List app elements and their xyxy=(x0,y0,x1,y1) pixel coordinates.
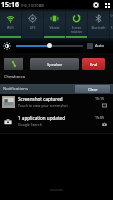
staticText: Auto xyxy=(95,43,104,48)
button[interactable]: End xyxy=(82,58,105,70)
button[interactable]: Vibrate xyxy=(44,9,65,38)
staticText: 15:16 xyxy=(1,0,19,9)
button[interactable]: Bluetooth xyxy=(88,9,109,38)
button[interactable]: Speaker xyxy=(30,58,79,70)
button[interactable]: Sync xyxy=(110,9,113,38)
staticText: Speaker xyxy=(47,62,63,67)
staticText: Sync xyxy=(110,26,113,30)
staticText: Screen xyxy=(66,26,87,30)
staticText: 15:05 xyxy=(95,115,104,120)
staticText: GPS xyxy=(22,26,43,30)
staticText: 15:15 xyxy=(95,96,104,101)
button[interactable]: Quick settings xyxy=(103,1,111,9)
button[interactable]: Screen xyxy=(66,9,87,38)
staticText: Screenshot captured xyxy=(18,96,63,102)
button[interactable]: Clear xyxy=(75,85,110,93)
button[interactable]: 1 application updated xyxy=(0,110,113,133)
staticText: THU, 3 OCTOBER xyxy=(21,4,44,8)
staticText: Clear xyxy=(88,87,98,92)
staticText: Google Search xyxy=(18,122,42,127)
staticText: Chewbacca xyxy=(4,74,26,79)
button[interactable]: Auto xyxy=(87,41,104,50)
button[interactable]: Call xyxy=(4,58,23,70)
staticText: End xyxy=(90,62,98,67)
staticText: Touch to view your screenshot xyxy=(18,103,68,108)
staticText: 1 application updated xyxy=(18,115,65,121)
staticText: Notifications xyxy=(3,86,28,92)
staticText: Bluetooth xyxy=(88,26,109,30)
button[interactable]: Screenshot captured xyxy=(0,94,113,110)
staticText: Wi-Fi xyxy=(0,26,21,30)
button[interactable]: Wi-Fi xyxy=(0,9,21,38)
button[interactable]: GPS xyxy=(22,9,43,38)
button[interactable]: Brightness xyxy=(16,41,83,50)
staticText: Vibrate xyxy=(44,26,65,30)
button[interactable]: Settings xyxy=(92,1,100,9)
staticText: rotation xyxy=(66,30,87,34)
